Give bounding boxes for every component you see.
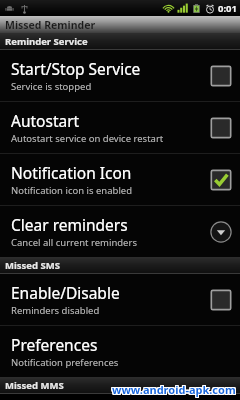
button[interactable]: Unchecked <box>208 287 234 313</box>
staticText: Clear reminders <box>11 214 128 235</box>
staticText: www.android-apk.com <box>111 383 235 398</box>
button[interactable]: Start/Stop Service <box>0 50 240 101</box>
staticText: www.android-apk.com <box>111 382 235 397</box>
staticText: Missed MMS <box>5 379 64 392</box>
staticText: www.android-apk.com <box>112 382 236 397</box>
button[interactable]: Preferences <box>0 326 240 377</box>
button[interactable]: Clear reminders <box>0 206 240 257</box>
staticText: Missed SMS <box>5 259 60 272</box>
staticText: Notification icon is enabled <box>11 184 133 197</box>
button[interactable]: Enable/Disable <box>0 274 240 325</box>
staticText: www.android-apk.com <box>113 382 237 397</box>
button[interactable]: Notification Icon <box>0 154 240 205</box>
staticText: Preferences <box>11 334 98 355</box>
staticText: Reminders disabled <box>11 304 100 317</box>
staticText: Autostart service on device restart <box>11 132 164 145</box>
button[interactable]: Clear reminders options <box>208 219 234 245</box>
staticText: Cancel all current reminders <box>11 236 137 249</box>
staticText: Notification Icon <box>11 162 132 183</box>
staticText: www.android-apk.com <box>112 381 236 396</box>
staticText: Enable/Disable <box>11 282 120 303</box>
staticText: www.android-apk.com <box>112 383 236 398</box>
button[interactable]: Unchecked <box>208 115 234 141</box>
staticText: Notification preferences <box>11 356 119 369</box>
staticText: 0:01 <box>218 2 237 15</box>
staticText: www.android-apk.com <box>113 381 237 396</box>
staticText: www.android-apk.com <box>111 381 235 396</box>
staticText: www.android-apk.com <box>113 383 237 398</box>
staticText: Reminder Service <box>5 35 88 48</box>
button[interactable]: Autostart <box>0 102 240 153</box>
button[interactable]: Checked <box>208 167 234 193</box>
staticText: Autostart <box>11 110 80 131</box>
staticText: Start/Stop Service <box>11 58 141 79</box>
staticText: Missed Reminder <box>5 18 96 32</box>
staticText: Service is stopped <box>11 80 92 93</box>
button[interactable]: Unchecked <box>208 63 234 89</box>
